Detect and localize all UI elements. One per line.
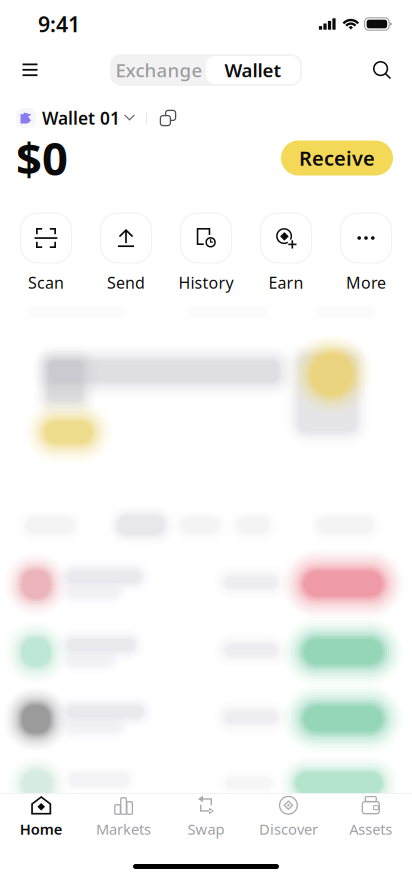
button[interactable]: Discover <box>247 795 330 839</box>
button[interactable]: Menu <box>8 48 52 92</box>
button[interactable]: More <box>326 213 406 293</box>
staticText: Earn <box>268 272 303 293</box>
staticText: Exchange <box>115 58 202 82</box>
staticText: Wallet 01 <box>42 106 120 129</box>
staticText: $0 <box>16 128 68 188</box>
button[interactable]: Markets <box>82 795 165 839</box>
button[interactable]: Exchange <box>112 56 206 84</box>
staticText: Send <box>107 272 145 293</box>
button[interactable]: Wallet 01 <box>16 105 135 131</box>
staticText: Wallet <box>224 58 281 82</box>
button[interactable]: Home <box>0 795 82 839</box>
button[interactable]: History <box>166 213 246 293</box>
button[interactable]: Swap <box>165 795 247 839</box>
staticText: More <box>346 272 386 293</box>
button[interactable]: Send <box>86 213 166 293</box>
staticText: 9:41 <box>38 10 80 38</box>
staticText: Receive <box>299 145 375 171</box>
staticText: Discover <box>259 819 318 839</box>
staticText: History <box>178 272 233 293</box>
button[interactable]: Earn <box>246 213 326 293</box>
staticText: Scan <box>28 272 64 293</box>
staticText: Swap <box>187 819 224 839</box>
button[interactable]: Assets <box>330 795 412 839</box>
button[interactable]: Search <box>360 48 404 92</box>
button[interactable]: Scan <box>6 213 86 293</box>
button[interactable]: Copy address <box>157 107 179 129</box>
button[interactable]: Wallet <box>206 56 300 84</box>
staticText: Markets <box>96 819 151 839</box>
staticText: Assets <box>349 819 392 839</box>
button[interactable]: Receive <box>281 140 393 175</box>
staticText: Home <box>20 819 63 839</box>
